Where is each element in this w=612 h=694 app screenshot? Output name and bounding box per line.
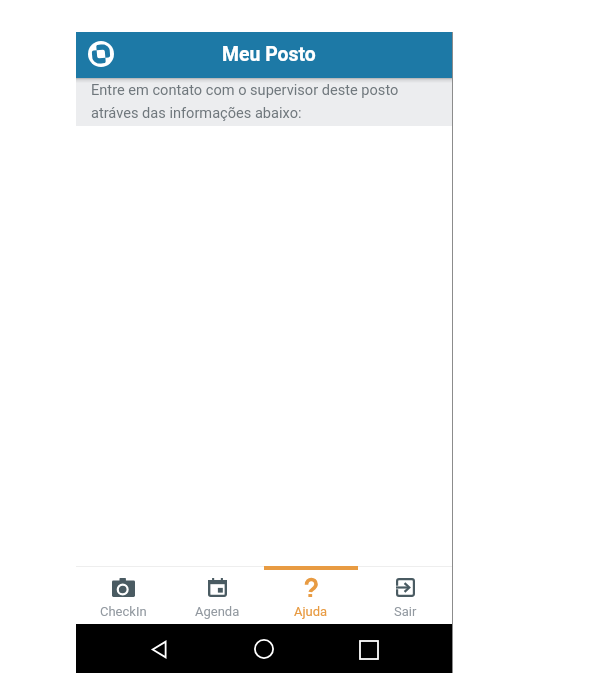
button[interactable]: Recents [347,627,391,671]
staticText: atráves das informações abaixo: [91,104,302,121]
staticText: Ajuda [294,604,328,619]
staticText: Meu Posto [222,43,316,66]
staticText: Agenda [195,604,240,619]
button[interactable]: Agenda [170,567,264,586]
staticText: Entre em contato com o supervisor deste … [91,81,399,98]
button[interactable]: Sair [358,567,452,586]
staticText: CheckIn [100,604,147,619]
staticText: Sair [394,604,417,619]
button[interactable]: Back [137,627,181,671]
button[interactable]: Ajuda [264,567,358,586]
button[interactable]: Menu [84,37,118,71]
button[interactable]: CheckIn [76,567,170,586]
button[interactable]: Home [242,627,286,671]
